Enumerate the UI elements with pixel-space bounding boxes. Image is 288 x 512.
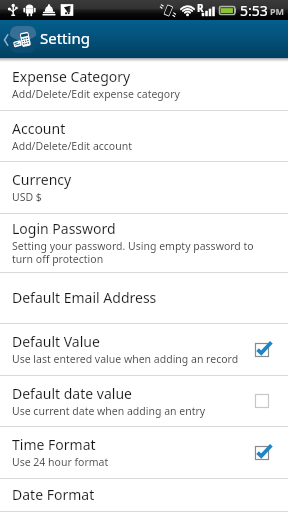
- staticText: Time Format: [12, 435, 96, 454]
- staticText: Add/Delete/Edit expense category: [12, 87, 180, 101]
- staticText: Use last entered value when adding an re…: [12, 352, 239, 366]
- button[interactable]: Currency: [0, 162, 288, 214]
- staticText: Login Password: [12, 219, 116, 238]
- button[interactable]: Navigate up: [0, 24, 36, 55]
- button[interactable]: Toggle: [251, 339, 273, 361]
- staticText: Add/Delete/Edit account: [12, 139, 132, 153]
- staticText: 5:53: [240, 1, 268, 20]
- button[interactable]: Expense Category: [0, 58, 288, 111]
- staticText: USD $: [12, 190, 42, 204]
- staticText: Use 24 hour format: [12, 455, 109, 469]
- button[interactable]: Default date value: [0, 376, 288, 427]
- staticText: Default date value: [12, 384, 132, 403]
- staticText: Setting: [40, 28, 90, 48]
- staticText: R: [197, 1, 204, 15]
- staticText: PM: [270, 5, 285, 17]
- button[interactable]: Account: [0, 111, 288, 162]
- button[interactable]: Default Email Address: [0, 273, 288, 324]
- staticText: Default Email Address: [12, 288, 157, 307]
- button[interactable]: Toggle: [251, 390, 273, 412]
- staticText: Expense Category: [12, 67, 131, 86]
- button[interactable]: Default Value: [0, 324, 288, 376]
- button[interactable]: Login Password: [0, 214, 288, 273]
- button[interactable]: Date Format: [0, 479, 288, 512]
- button[interactable]: Toggle: [251, 442, 273, 464]
- button[interactable]: Time Format: [0, 427, 288, 479]
- staticText: Currency: [12, 170, 72, 189]
- staticText: Use current date when adding an entry: [12, 404, 206, 418]
- staticText: Date Format: [12, 485, 95, 504]
- staticText: Account: [12, 119, 66, 138]
- staticText: Setting your password. Using empty passw…: [12, 239, 260, 266]
- staticText: Default Value: [12, 332, 100, 351]
